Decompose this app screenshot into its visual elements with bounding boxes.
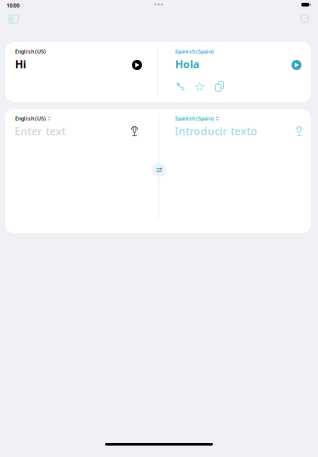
staticText: Hola <box>175 57 199 71</box>
button[interactable]: Play <box>132 60 142 70</box>
button[interactable]: Swap Languages <box>152 163 166 177</box>
button[interactable]: Add to Favorites <box>194 81 205 92</box>
staticText: 10:00 <box>6 2 19 9</box>
staticText: Spanish (Spain) <box>175 115 214 122</box>
staticText: Enter text <box>14 124 65 138</box>
staticText: English (US) <box>15 115 46 122</box>
staticText: Hi <box>15 57 26 71</box>
button[interactable]: Full Screen <box>174 81 186 92</box>
button[interactable]: More <box>301 15 309 23</box>
staticText: Spanish (Spain) <box>175 48 214 55</box>
button[interactable]: Play Translation <box>291 60 301 70</box>
staticText: English (US) <box>15 48 46 55</box>
button[interactable]: Dictate <box>131 126 138 136</box>
button[interactable]: Dictate Spanish <box>295 126 303 136</box>
button[interactable]: Show Sidebar <box>9 15 18 23</box>
staticText: Introducir texto <box>174 124 257 138</box>
button[interactable]: Copy <box>214 81 224 92</box>
